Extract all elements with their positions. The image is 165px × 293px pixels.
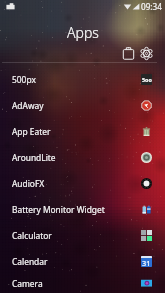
button[interactable]: App manager [122, 47, 135, 60]
staticText: Calendar [12, 256, 48, 267]
button[interactable]: AdAway [0, 92, 165, 118]
button[interactable]: 500px [0, 66, 165, 92]
staticText: 5oo [142, 76, 152, 83]
staticText: App Eater [12, 126, 51, 137]
button[interactable]: Calendar [0, 248, 165, 274]
staticText: AroundLite [12, 152, 56, 163]
staticText: AdAway [12, 100, 44, 111]
staticText: 09:34 [141, 1, 162, 12]
button[interactable]: Battery Monitor Widget [0, 196, 165, 222]
staticText: Apps [67, 23, 99, 42]
button[interactable]: AudioFX [0, 170, 165, 196]
button[interactable]: Camera [0, 274, 165, 293]
button[interactable]: App Eater [0, 118, 165, 144]
staticText: Battery Monitor Widget [12, 204, 105, 215]
staticText: Camera [12, 278, 43, 289]
staticText: 31 [142, 258, 151, 267]
button[interactable]: Settings [140, 47, 153, 60]
staticText: AudioFX [12, 178, 45, 189]
button[interactable]: AroundLite [0, 144, 165, 170]
staticText: Calculator [12, 230, 52, 241]
staticText: 500px [12, 74, 36, 85]
button[interactable]: Calculator [0, 222, 165, 248]
